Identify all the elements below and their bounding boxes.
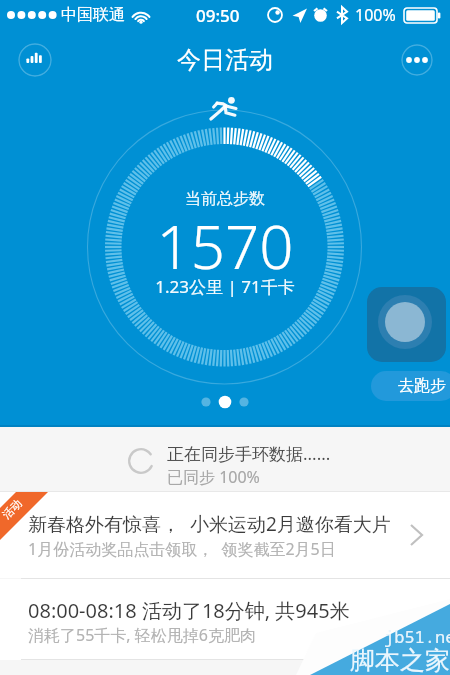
staticText: 中国联通 xyxy=(61,5,125,25)
button[interactable]: 去跑步 xyxy=(371,371,450,401)
button[interactable]: 活动 xyxy=(0,492,450,578)
staticText: 1月份活动奖品点击领取， 领奖截至2月5日 xyxy=(28,538,336,560)
staticText: 当前总步数 xyxy=(185,189,265,209)
staticText: jb51.net xyxy=(384,625,450,648)
staticText: 今日活动 xyxy=(177,45,273,75)
staticText: 正在同步手环数据...... xyxy=(167,442,331,465)
button[interactable]: More options xyxy=(401,44,433,76)
staticText: 1570 xyxy=(156,205,294,287)
staticText: 08:00-08:18 活动了18分钟, 共945米 xyxy=(28,597,350,624)
button[interactable]: 08:00-08:18 活动了18分钟, 共945米 xyxy=(0,579,450,660)
staticText: 脚本之家 xyxy=(350,645,450,675)
staticText: 活动 xyxy=(0,496,25,522)
staticText: 去跑步 xyxy=(398,376,446,396)
staticText: 1.23公里 | 71千卡 xyxy=(155,275,295,298)
staticText: 已同步 100% xyxy=(167,466,260,488)
button[interactable]: Statistics xyxy=(18,43,52,77)
staticText: 100% xyxy=(355,4,396,26)
staticText: 新春格外有惊喜， 小米运动2月邀你看大片 xyxy=(28,511,391,537)
button[interactable]: Start run xyxy=(367,287,446,362)
button[interactable]: 正在同步手环数据...... xyxy=(0,427,450,491)
staticText: 09:50 xyxy=(196,4,240,27)
staticText: 消耗了55千卡, 轻松甩掉6克肥肉 xyxy=(28,624,256,646)
